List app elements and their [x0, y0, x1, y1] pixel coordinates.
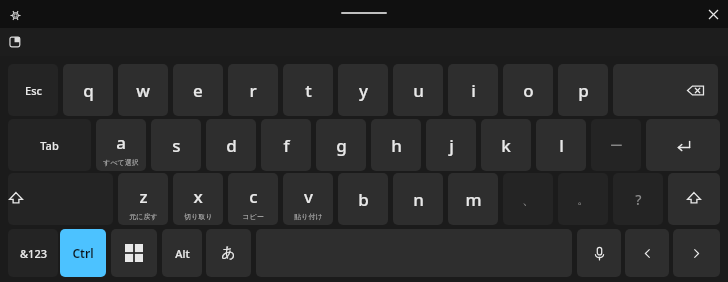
button[interactable]: i — [448, 64, 498, 116]
staticText: d — [226, 134, 237, 157]
staticText: r — [249, 79, 257, 102]
button[interactable]: Close — [701, 2, 725, 26]
button[interactable]: b — [338, 173, 388, 225]
button[interactable]: a — [96, 119, 146, 171]
button[interactable]: q — [63, 64, 113, 116]
button[interactable]: d — [206, 119, 256, 171]
staticText: コピー — [242, 212, 264, 221]
staticText: m — [465, 188, 482, 211]
staticText: v — [304, 185, 313, 208]
button[interactable]: o — [503, 64, 553, 116]
button[interactable]: f — [261, 119, 311, 171]
button[interactable]: Enter — [646, 119, 720, 171]
staticText: n — [413, 188, 424, 211]
staticText: g — [336, 134, 347, 157]
staticText: すべて選択 — [103, 158, 139, 167]
button[interactable]: Ctrl — [60, 229, 106, 277]
staticText: Esc — [25, 83, 42, 98]
staticText: &123 — [20, 246, 47, 261]
button[interactable]: z — [118, 173, 168, 225]
staticText: 切り取り — [184, 212, 213, 221]
button[interactable]: k — [481, 119, 531, 171]
button[interactable]: c — [228, 173, 278, 225]
button[interactable]: あ — [206, 229, 251, 277]
button[interactable]: x — [173, 173, 223, 225]
staticText: p — [578, 79, 589, 102]
button[interactable]: Previous — [625, 229, 669, 277]
staticText: k — [501, 134, 511, 157]
button[interactable]: Shift — [8, 173, 113, 225]
button[interactable]: y — [338, 64, 388, 116]
button[interactable]: u — [393, 64, 443, 116]
button[interactable]: r — [228, 64, 278, 116]
button[interactable]: &123 — [8, 229, 58, 277]
button[interactable]: Tab — [8, 119, 91, 171]
button[interactable]: Windows — [111, 229, 157, 277]
staticText: 貼り付け — [294, 212, 323, 221]
button[interactable]: Alt — [162, 229, 202, 277]
staticText: ? — [635, 190, 642, 209]
staticText: 元に戻す — [129, 212, 158, 221]
staticText: x — [193, 185, 203, 208]
staticText: w — [136, 79, 150, 102]
staticText: 。 — [577, 191, 590, 207]
staticText: c — [249, 185, 258, 208]
staticText: Ctrl — [72, 245, 94, 261]
button[interactable]: Esc — [8, 64, 58, 116]
staticText: l — [559, 134, 564, 157]
button[interactable]: ー — [591, 119, 641, 171]
button[interactable]: Input mode panel — [4, 31, 26, 53]
staticText: j — [449, 134, 454, 157]
staticText: o — [523, 79, 534, 102]
staticText: t — [305, 79, 312, 102]
button[interactable]: l — [536, 119, 586, 171]
staticText: z — [139, 185, 148, 208]
staticText: Alt — [175, 246, 190, 261]
button[interactable]: Shift — [668, 173, 720, 225]
button[interactable]: Voice input — [577, 229, 621, 277]
staticText: あ — [221, 244, 236, 262]
button[interactable]: g — [316, 119, 366, 171]
button[interactable]: Settings — [4, 4, 26, 26]
button[interactable]: ? — [613, 173, 663, 225]
button[interactable]: Backspace — [613, 64, 718, 116]
staticText: u — [413, 79, 424, 102]
button[interactable]: t — [283, 64, 333, 116]
button[interactable]: h — [371, 119, 421, 171]
button[interactable]: j — [426, 119, 476, 171]
staticText: f — [283, 134, 290, 157]
staticText: i — [471, 79, 476, 102]
button[interactable]: m — [448, 173, 498, 225]
staticText: h — [391, 134, 402, 157]
button[interactable]: n — [393, 173, 443, 225]
button[interactable]: w — [118, 64, 168, 116]
staticText: q — [83, 79, 94, 102]
staticText: e — [193, 79, 203, 102]
staticText: y — [359, 79, 368, 102]
staticText: s — [172, 134, 181, 157]
button[interactable]: p — [558, 64, 608, 116]
staticText: b — [358, 188, 369, 211]
button[interactable]: e — [173, 64, 223, 116]
staticText: a — [116, 131, 126, 154]
staticText: ー — [610, 137, 623, 153]
staticText: Tab — [40, 138, 59, 153]
button[interactable]: s — [151, 119, 201, 171]
button[interactable]: v — [283, 173, 333, 225]
staticText: 、 — [522, 191, 535, 207]
button[interactable]: Next — [673, 229, 720, 277]
